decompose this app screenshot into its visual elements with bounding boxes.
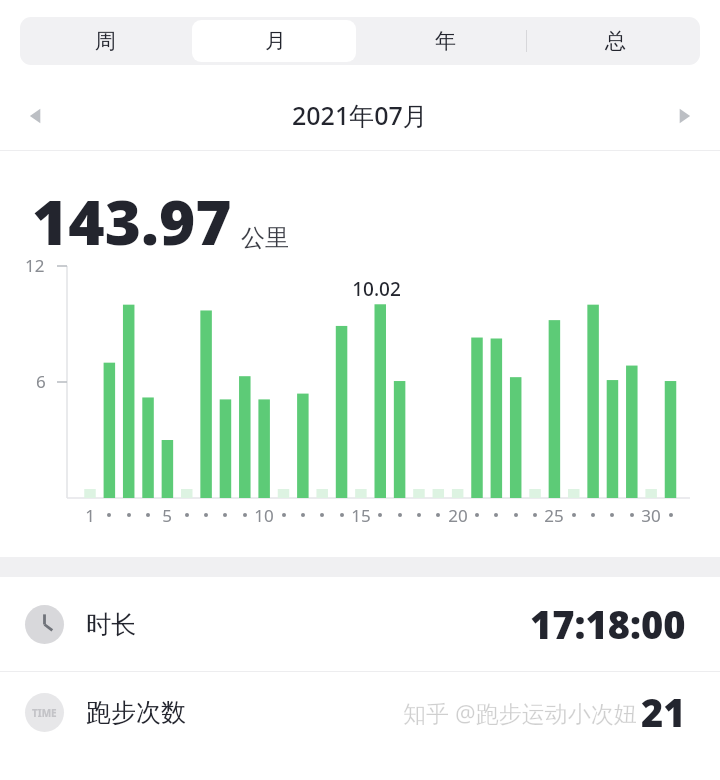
- other: 时长: [25, 605, 64, 644]
- button[interactable]: 月: [190, 17, 360, 65]
- staticText: 知乎 @跑步运动小次妞: [403, 697, 637, 728]
- staticText: 6: [36, 370, 46, 393]
- staticText: 15: [351, 504, 371, 527]
- other: 跑步次数: [25, 693, 64, 732]
- staticText: 12: [25, 254, 45, 277]
- button[interactable]: 跑步次数: [0, 672, 720, 752]
- button[interactable]: 周: [20, 17, 190, 65]
- button[interactable]: 上一月: [16, 96, 56, 136]
- staticText: 周: [95, 28, 116, 54]
- staticText: 143.97: [32, 179, 232, 263]
- staticText: 5: [162, 504, 172, 527]
- staticText: 跑步次数: [86, 697, 186, 728]
- staticText: 公里: [241, 223, 289, 253]
- staticText: 30: [641, 504, 661, 527]
- staticText: 20: [448, 504, 468, 527]
- staticText: 2021年07月: [292, 98, 428, 132]
- staticText: 年: [435, 28, 456, 54]
- staticText: 10: [254, 504, 274, 527]
- staticText: 10.02: [352, 276, 401, 302]
- button[interactable]: 下一月: [664, 96, 704, 136]
- staticText: 总: [605, 28, 626, 54]
- staticText: 25: [544, 504, 564, 527]
- staticText: 21: [641, 686, 686, 738]
- staticText: 时长: [86, 609, 136, 640]
- staticText: 17:18:00: [530, 598, 686, 650]
- staticText: TIME: [32, 706, 57, 720]
- button[interactable]: 总: [530, 17, 700, 65]
- staticText: 月: [265, 28, 286, 54]
- staticText: 1: [85, 504, 95, 527]
- button[interactable]: 年: [360, 17, 530, 65]
- button[interactable]: 时长: [0, 577, 720, 671]
